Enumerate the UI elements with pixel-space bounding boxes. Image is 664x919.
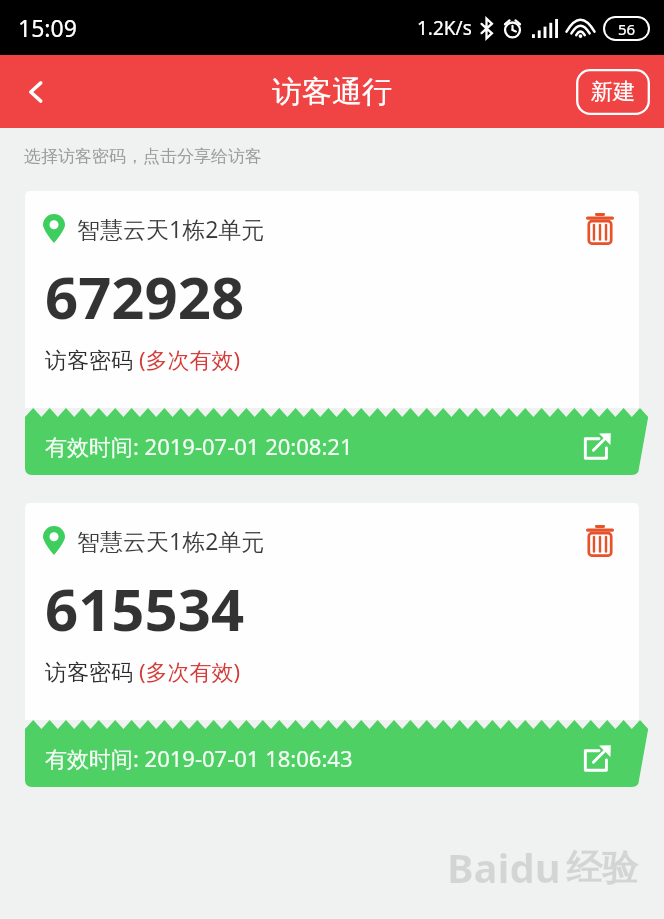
staticText: 615534 [45, 569, 245, 648]
staticText: 访客密码 [45, 344, 139, 374]
staticText: 672928 [45, 257, 245, 336]
staticText: 新建 [591, 78, 635, 106]
staticText: 1.2K/s [417, 15, 472, 41]
button[interactable]: Back [6, 62, 66, 122]
staticText: 智慧云天1栋2单元 [77, 213, 265, 244]
button[interactable]: Delete [577, 517, 623, 563]
staticText: 访客密码 [45, 656, 139, 686]
staticText: 选择访客密码，点击分享给访客 [24, 146, 262, 167]
staticText: 智慧云天1栋2单元 [77, 525, 265, 556]
button[interactable]: 智慧云天1栋2单元 [25, 191, 639, 408]
staticText: Baidu [447, 840, 561, 894]
button[interactable]: Share [573, 735, 619, 781]
staticText: 有效时间: 2019-07-01 20:08:21 [45, 431, 353, 461]
button[interactable]: Share [573, 423, 619, 469]
button[interactable]: 新建 [576, 69, 650, 115]
button[interactable]: Delete [577, 205, 623, 251]
staticText: (多次有效) [139, 344, 241, 374]
staticText: (多次有效) [139, 656, 241, 686]
staticText: 访客通行 [272, 73, 392, 111]
staticText: 15:09 [18, 12, 77, 43]
button[interactable]: 智慧云天1栋2单元 [25, 503, 639, 720]
staticText: 56 [618, 19, 636, 39]
staticText: 有效时间: 2019-07-01 18:06:43 [45, 743, 353, 773]
staticText: 经验 [566, 845, 638, 890]
